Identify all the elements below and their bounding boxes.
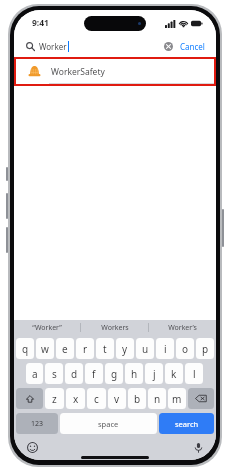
button[interactable]: search bbox=[159, 413, 214, 434]
staticText: j bbox=[153, 367, 156, 381]
button[interactable]: Workers bbox=[81, 320, 148, 335]
staticText: b bbox=[134, 392, 141, 406]
button[interactable]: Cancel bbox=[179, 39, 206, 54]
staticText: 9:41 bbox=[32, 17, 49, 29]
button[interactable]: a bbox=[26, 363, 43, 384]
button[interactable]: i bbox=[156, 338, 174, 359]
button[interactable]: w bbox=[36, 338, 54, 359]
button[interactable]: r bbox=[76, 338, 94, 359]
staticText: x bbox=[73, 392, 79, 406]
button[interactable]: x bbox=[66, 388, 85, 409]
staticText: y bbox=[122, 342, 128, 356]
button[interactable]: y bbox=[116, 338, 134, 359]
staticText: n bbox=[154, 392, 161, 406]
staticText: t bbox=[103, 342, 107, 356]
staticText: a bbox=[32, 367, 38, 381]
staticText: search bbox=[175, 419, 199, 429]
staticText: c bbox=[94, 392, 99, 406]
button[interactable]: Shift bbox=[16, 388, 43, 409]
button[interactable]: Dictate bbox=[190, 439, 206, 455]
staticText: d bbox=[71, 367, 78, 381]
staticText: u bbox=[142, 342, 149, 356]
staticText: h bbox=[131, 367, 138, 381]
staticText: WorkerSafety bbox=[51, 66, 105, 78]
button[interactable]: Worker’s bbox=[149, 320, 216, 335]
staticText: q bbox=[22, 342, 29, 356]
button[interactable]: o bbox=[176, 338, 194, 359]
button[interactable]: 123 bbox=[16, 413, 58, 434]
staticText: 123 bbox=[31, 419, 44, 429]
staticText: i bbox=[164, 342, 167, 356]
button[interactable]: Clear text bbox=[162, 40, 175, 53]
button[interactable]: e bbox=[56, 338, 74, 359]
button[interactable]: v bbox=[108, 388, 126, 409]
button[interactable]: Worker bbox=[26, 36, 162, 57]
staticText: s bbox=[52, 367, 57, 381]
button[interactable]: s bbox=[45, 363, 63, 384]
staticText: r bbox=[83, 342, 88, 356]
button[interactable]: k bbox=[165, 363, 183, 384]
staticText: Cancel bbox=[180, 41, 205, 52]
button[interactable]: c bbox=[87, 388, 106, 409]
staticText: m bbox=[172, 392, 182, 406]
button[interactable]: g bbox=[105, 363, 123, 384]
staticText: Worker bbox=[39, 41, 67, 52]
button[interactable]: f bbox=[85, 363, 103, 384]
staticText: Workers bbox=[101, 323, 129, 333]
button[interactable]: space bbox=[60, 413, 157, 434]
staticText: p bbox=[202, 342, 209, 356]
staticText: “Worker” bbox=[32, 323, 62, 333]
button[interactable]: Emoji bbox=[24, 439, 40, 455]
button[interactable]: q bbox=[16, 338, 34, 359]
staticText: Worker’s bbox=[168, 323, 197, 333]
staticText: f bbox=[92, 367, 96, 381]
button[interactable]: WorkerSafety bbox=[16, 59, 214, 84]
staticText: space bbox=[98, 419, 119, 429]
staticText: z bbox=[52, 392, 57, 406]
staticText: e bbox=[62, 342, 68, 356]
button[interactable]: n bbox=[148, 388, 166, 409]
staticText: o bbox=[182, 342, 189, 356]
button[interactable]: j bbox=[145, 363, 163, 384]
button[interactable]: u bbox=[136, 338, 154, 359]
button[interactable]: Backspace bbox=[188, 388, 214, 409]
button[interactable]: p bbox=[196, 338, 214, 359]
button[interactable]: m bbox=[168, 388, 186, 409]
button[interactable]: h bbox=[125, 363, 143, 384]
staticText: k bbox=[171, 367, 177, 381]
button[interactable]: d bbox=[65, 363, 83, 384]
button[interactable]: z bbox=[45, 388, 64, 409]
staticText: v bbox=[114, 392, 120, 406]
staticText: l bbox=[193, 367, 196, 381]
button[interactable]: l bbox=[185, 363, 203, 384]
button[interactable]: b bbox=[128, 388, 146, 409]
staticText: w bbox=[41, 342, 49, 356]
button[interactable]: “Worker” bbox=[14, 320, 80, 335]
button[interactable]: t bbox=[96, 338, 114, 359]
staticText: g bbox=[111, 367, 118, 381]
